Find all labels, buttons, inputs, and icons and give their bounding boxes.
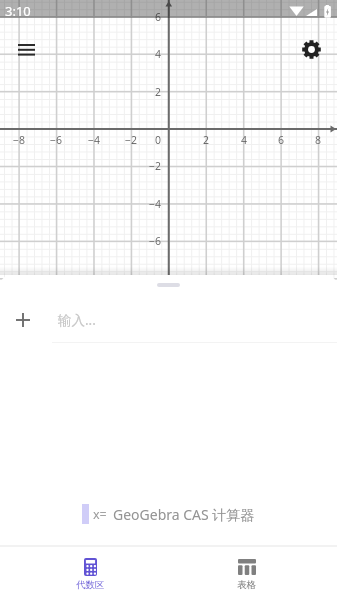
staticText: 8 [315, 133, 322, 147]
staticText: 3:10 [5, 2, 31, 20]
button[interactable]: 代数区 [12, 547, 168, 600]
button[interactable]: 表格 [168, 547, 325, 600]
staticText: 代数区 [76, 579, 105, 591]
staticText: 2 [155, 85, 162, 99]
staticText: GeoGebra CAS 计算器 [113, 505, 255, 524]
staticText: 2 [203, 133, 210, 147]
button[interactable]: 输入... [46, 301, 337, 339]
button[interactable]: Menu [9, 34, 43, 68]
staticText: −4 [88, 133, 101, 147]
staticText: −4 [149, 197, 162, 211]
staticText: 6 [155, 10, 162, 24]
button[interactable]: Settings [294, 32, 328, 66]
staticText: 6 [278, 133, 285, 147]
staticText: 4 [241, 133, 248, 147]
staticText: −6 [149, 234, 162, 248]
staticText: −6 [50, 133, 63, 147]
button[interactable]: Add input [0, 301, 46, 339]
staticText: −2 [149, 159, 162, 173]
staticText: 4 [155, 47, 162, 61]
staticText: 表格 [237, 579, 256, 591]
staticText: 输入... [58, 311, 96, 329]
staticText: −8 [13, 133, 26, 147]
staticText: −2 [125, 133, 138, 147]
staticText: x= [93, 506, 107, 523]
staticText: 0 [155, 133, 162, 147]
